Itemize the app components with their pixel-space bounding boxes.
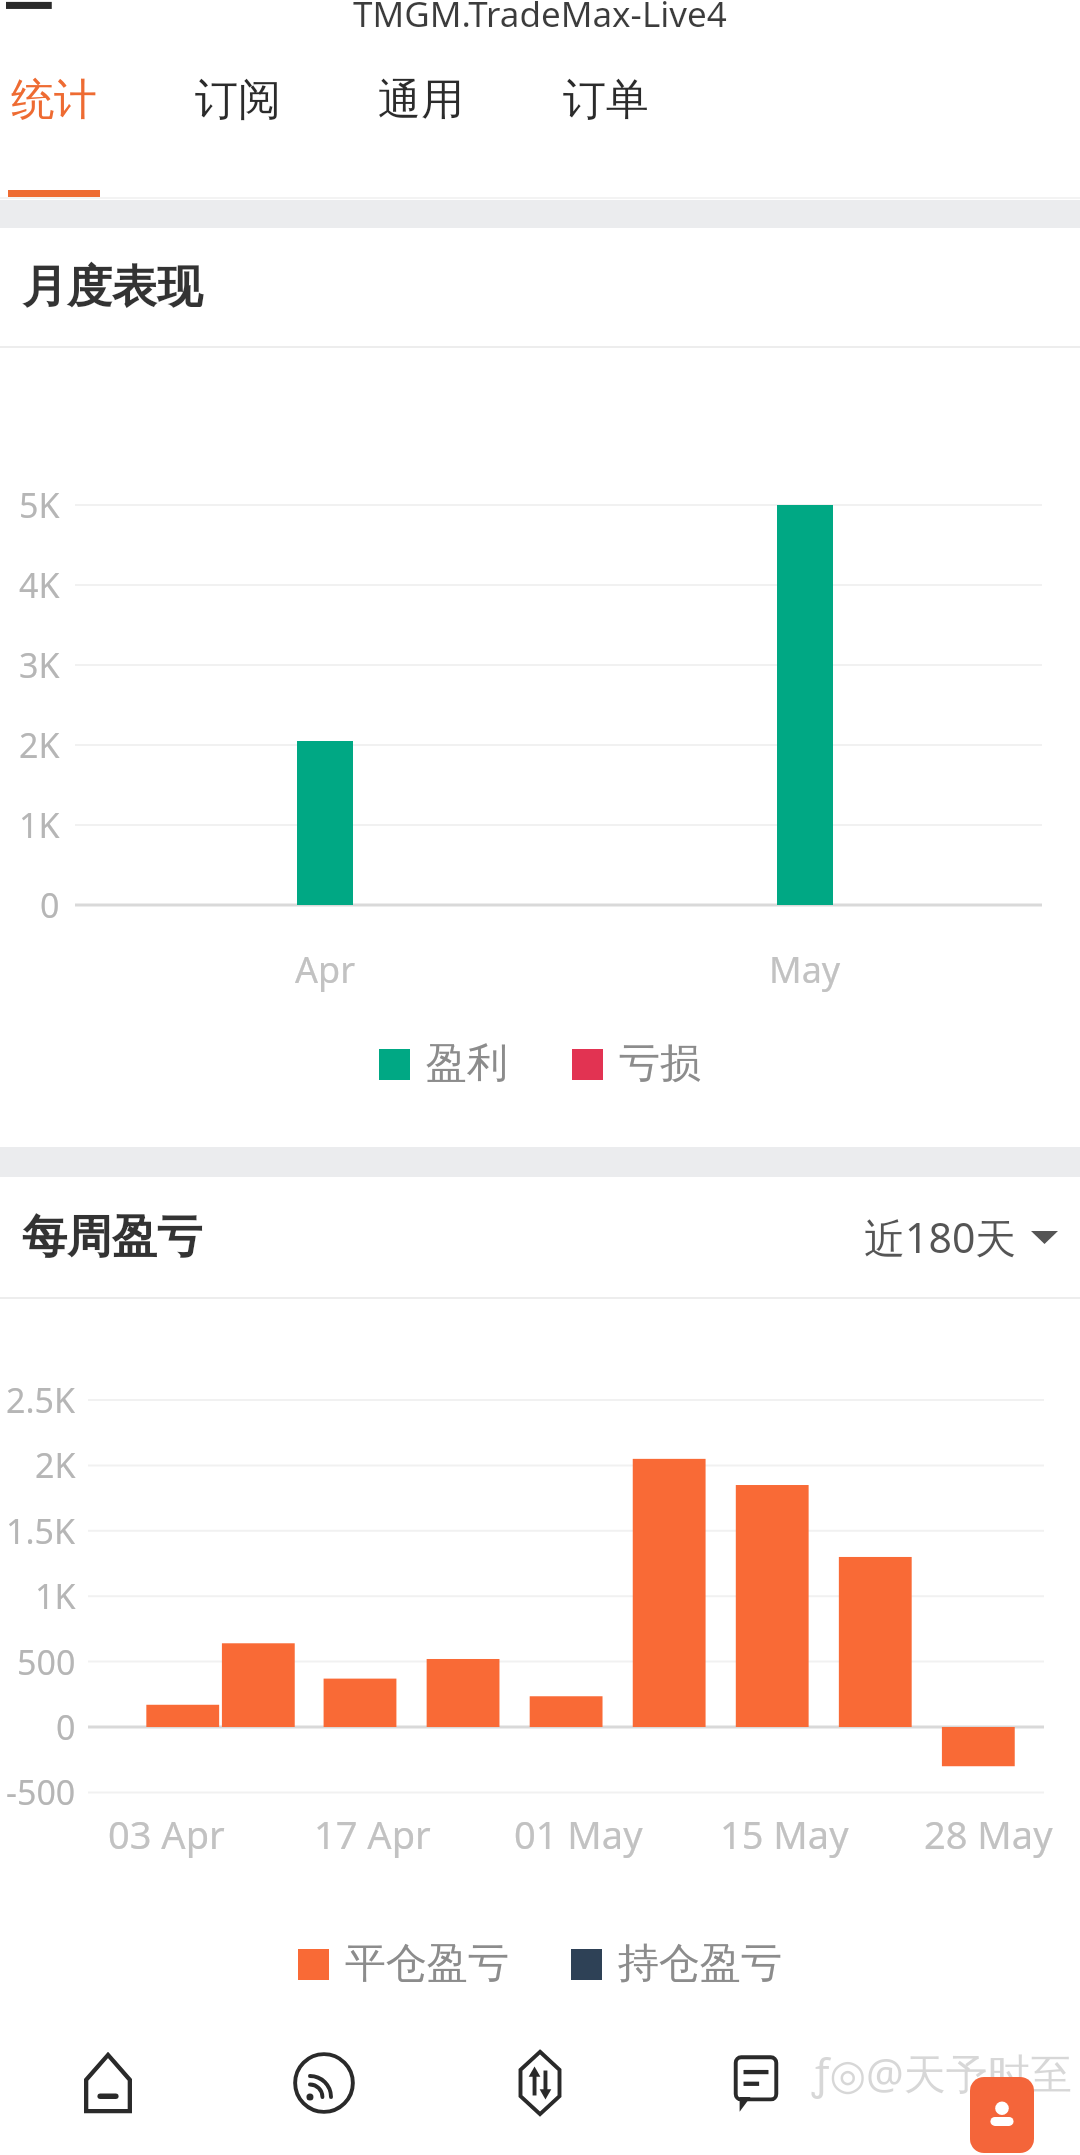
button[interactable]: Profile — [970, 2077, 1034, 2153]
staticText: TMGM.TradeMax-Live4 — [353, 0, 727, 38]
button[interactable]: Home — [0, 2010, 216, 2155]
staticText: 500 — [17, 1639, 76, 1685]
staticText: 1.5K — [6, 1508, 76, 1554]
staticText: 5K — [19, 482, 60, 528]
staticText: 2K — [35, 1442, 76, 1488]
button[interactable]: 持仓盈亏 — [571, 1938, 782, 1990]
staticText: 亏损 — [619, 1038, 701, 1090]
button[interactable]: 亏损 — [572, 1038, 701, 1090]
staticText: 1K — [19, 802, 60, 848]
staticText: 1K — [35, 1573, 76, 1619]
staticText: 01 May — [514, 1808, 643, 1860]
staticText: May — [769, 945, 841, 994]
button[interactable]: 平仓盈亏 — [298, 1938, 509, 1990]
staticText: 近180天 — [864, 1209, 1017, 1265]
staticText: ƒ◎@天予时至 — [812, 2044, 1072, 2101]
staticText: -500 — [6, 1769, 76, 1815]
staticText: 0 — [40, 882, 60, 928]
button[interactable]: 通用 — [347, 48, 495, 152]
staticText: 03 Apr — [108, 1808, 225, 1860]
button[interactable]: 订单 — [532, 48, 680, 152]
staticText: 每周盈亏 — [22, 1209, 202, 1266]
button[interactable]: 统计 — [0, 48, 128, 152]
button[interactable]: Messages — [648, 2010, 864, 2155]
staticText: 统计 — [11, 73, 97, 127]
button[interactable]: 近180天 — [864, 1209, 1058, 1265]
staticText: 订单 — [563, 73, 649, 127]
staticText: 3K — [19, 642, 60, 688]
staticText: 盈利 — [426, 1038, 508, 1090]
button[interactable]: Signals — [216, 2010, 432, 2155]
button[interactable]: 订阅 — [164, 48, 312, 152]
staticText: Apr — [295, 945, 356, 994]
button[interactable]: Trade — [432, 2010, 648, 2155]
staticText: 28 May — [924, 1808, 1053, 1860]
staticText: 通用 — [378, 73, 464, 127]
staticText: 2K — [19, 722, 60, 768]
button[interactable]: Profile — [864, 2010, 1080, 2155]
staticText: 17 Apr — [314, 1808, 431, 1860]
staticText: 持仓盈亏 — [618, 1938, 782, 1990]
other: Menu — [6, 0, 58, 14]
staticText: 月度表现 — [22, 259, 202, 316]
staticText: 15 May — [720, 1808, 849, 1860]
staticText: 平仓盈亏 — [345, 1938, 509, 1990]
staticText: 订阅 — [195, 73, 281, 127]
button[interactable]: 盈利 — [379, 1038, 508, 1090]
staticText: 0 — [56, 1704, 76, 1750]
staticText: 2.5K — [6, 1377, 76, 1423]
staticText: 4K — [19, 562, 60, 608]
